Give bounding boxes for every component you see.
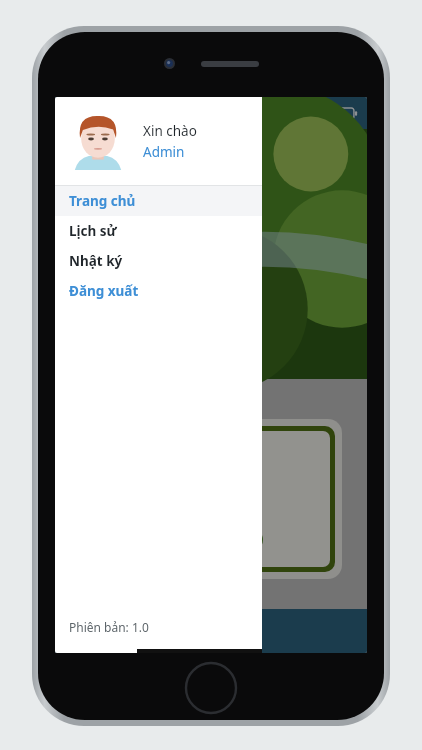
staticText: Trang chủ <box>69 192 136 210</box>
staticText: Đăng xuất <box>69 282 139 300</box>
button[interactable]: Nhật ký <box>55 246 262 276</box>
staticText: Lịch sử <box>69 222 117 240</box>
staticText: Nhật ký <box>69 252 123 270</box>
button[interactable]: Lịch sử <box>55 216 262 246</box>
button[interactable]: Xin chào <box>55 97 262 185</box>
staticText: Admin <box>143 143 185 161</box>
staticText: Xin chào <box>143 122 197 140</box>
button[interactable]: Đăng xuất <box>55 276 262 306</box>
staticText: Phiên bản: 1.0 <box>69 619 149 635</box>
button[interactable]: Trang chủ <box>55 186 262 216</box>
